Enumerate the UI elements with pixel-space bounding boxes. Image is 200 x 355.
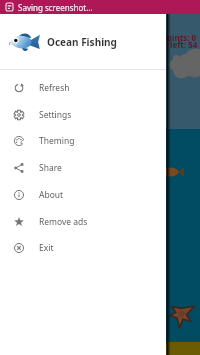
- staticText: Refresh: [39, 82, 70, 94]
- button[interactable]: About: [0, 182, 166, 208]
- staticText: Share: [39, 162, 62, 174]
- button[interactable]: Exit: [0, 235, 166, 261]
- staticText: Theming: [39, 135, 75, 147]
- staticText: Settings: [39, 109, 72, 121]
- staticText: Remove ads: [39, 216, 88, 228]
- staticText: Exit: [39, 242, 54, 254]
- staticText: About: [39, 189, 64, 201]
- staticText: left: 54: [170, 39, 198, 50]
- button[interactable]: Share: [0, 155, 166, 181]
- button[interactable]: Remove ads: [0, 209, 166, 235]
- staticText: Saving screenshot…: [18, 2, 93, 13]
- button[interactable]: Refresh: [0, 75, 166, 101]
- staticText: Ocean Fishing: [47, 35, 117, 49]
- button[interactable]: Settings: [0, 102, 166, 128]
- button[interactable]: Theming: [0, 128, 166, 154]
- staticText: points: 0: [162, 32, 197, 43]
